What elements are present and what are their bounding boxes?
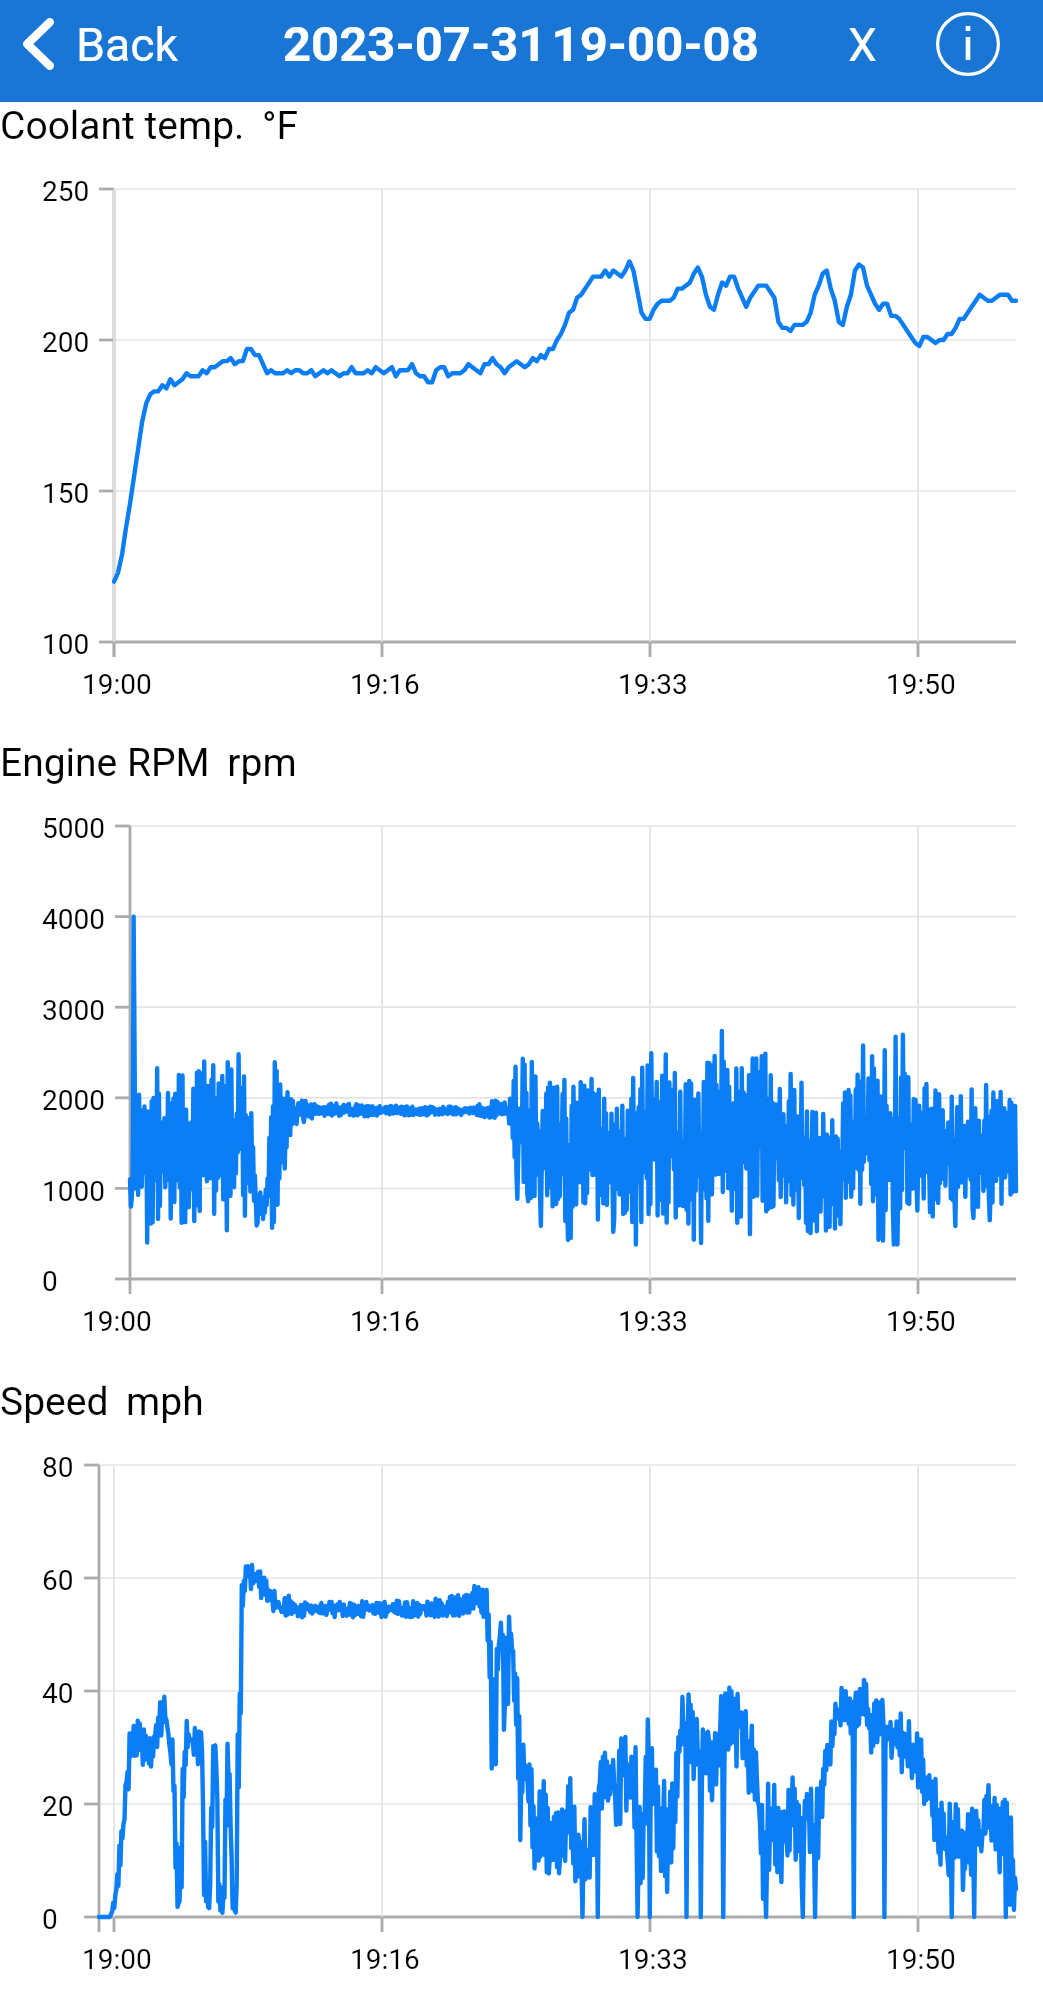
staticText: 19:16: [350, 1305, 420, 1338]
staticText: Speed mph: [0, 1379, 204, 1425]
staticText: Coolant temp. °F: [0, 103, 299, 149]
button[interactable]: Info: [925, 0, 1011, 102]
staticText: Engine RPM rpm: [0, 740, 297, 786]
staticText: 100: [42, 628, 90, 661]
staticText: 5000: [42, 812, 105, 845]
staticText: Back: [76, 18, 179, 72]
staticText: 0: [42, 1903, 58, 1936]
staticText: 19:33: [618, 1943, 688, 1976]
staticText: 4000: [42, 903, 105, 936]
staticText: 19:00: [82, 668, 152, 701]
staticText: 200: [42, 326, 90, 359]
staticText: 250: [42, 175, 90, 208]
staticText: 19:00: [82, 1943, 152, 1976]
staticText: 19:50: [886, 1305, 956, 1338]
staticText: 19:50: [886, 668, 956, 701]
button[interactable]: Close: [815, 0, 909, 102]
staticText: 19:16: [350, 1943, 420, 1976]
staticText: 60: [42, 1564, 74, 1597]
staticText: 80: [42, 1451, 74, 1484]
staticText: 1000: [42, 1175, 105, 1208]
staticText: 0: [42, 1265, 58, 1298]
staticText: 19:33: [618, 1305, 688, 1338]
staticText: 19:33: [618, 668, 688, 701]
staticText: 19:00: [82, 1305, 152, 1338]
staticText: 19:50: [886, 1943, 956, 1976]
staticText: 150: [42, 477, 90, 510]
staticText: 3000: [42, 994, 105, 1027]
staticText: X: [848, 18, 877, 72]
staticText: 19:16: [350, 668, 420, 701]
staticText: 20: [42, 1790, 74, 1823]
staticText: 40: [42, 1677, 74, 1710]
button[interactable]: Back: [0, 16, 193, 86]
staticText: 2000: [42, 1084, 105, 1117]
staticText: 2023-07-31 19-00-08: [283, 16, 759, 73]
